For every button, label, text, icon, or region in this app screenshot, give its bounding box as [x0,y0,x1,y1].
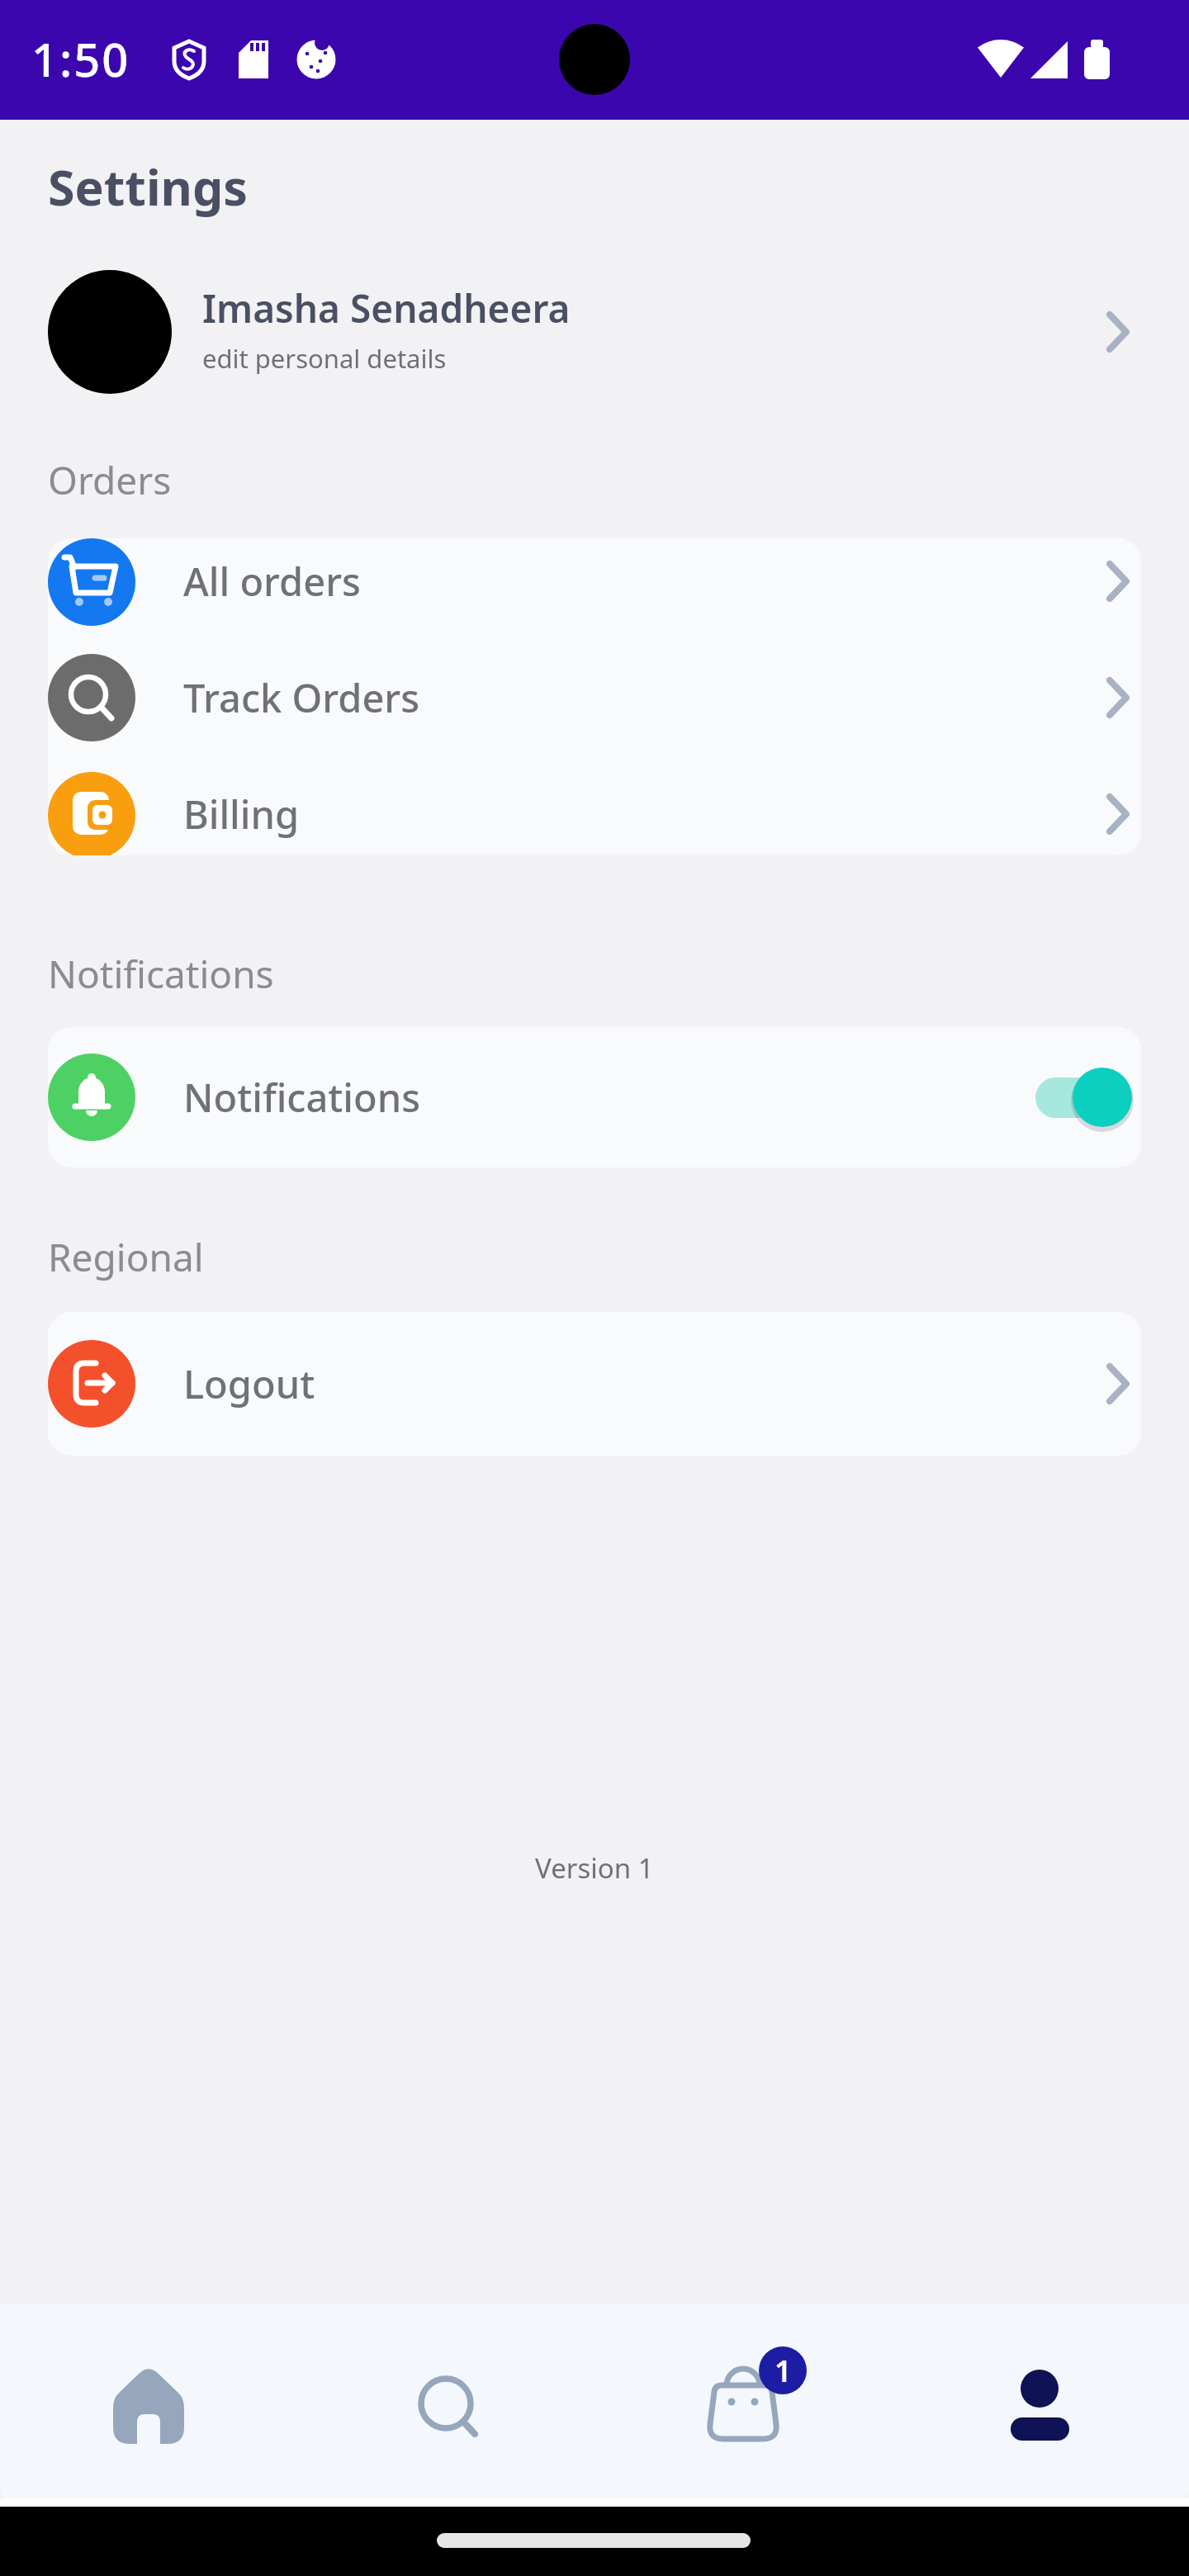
button[interactable]: Billing [48,772,1141,855]
button[interactable]: All orders [48,538,1141,623]
staticText: Version 1 [535,1849,654,1887]
button[interactable]: 1 [594,2304,892,2504]
button[interactable] [892,2304,1189,2504]
staticText: Track Orders [183,671,420,724]
staticText: Billing [183,788,300,841]
button[interactable]: Logout [48,1312,1141,1456]
button[interactable]: Track Orders [48,623,1141,772]
staticText: Notifications [183,1071,420,1124]
button[interactable] [0,2304,297,2504]
staticText: Notifications [48,948,274,1000]
staticText: 1 [775,2351,792,2391]
staticText: Logout [183,1357,315,1410]
staticText: edit personal details [202,341,447,376]
button[interactable]: Imasha Senadheera [48,269,1141,395]
staticText: Orders [48,454,172,506]
button[interactable]: Notifications [48,1027,1141,1167]
button[interactable] [297,2304,594,2504]
staticText: Regional [48,1231,204,1283]
staticText: 1:50 [31,27,130,90]
staticText: Settings [48,154,248,220]
staticText: All orders [183,555,361,608]
staticText: Imasha Senadheera [202,282,571,334]
